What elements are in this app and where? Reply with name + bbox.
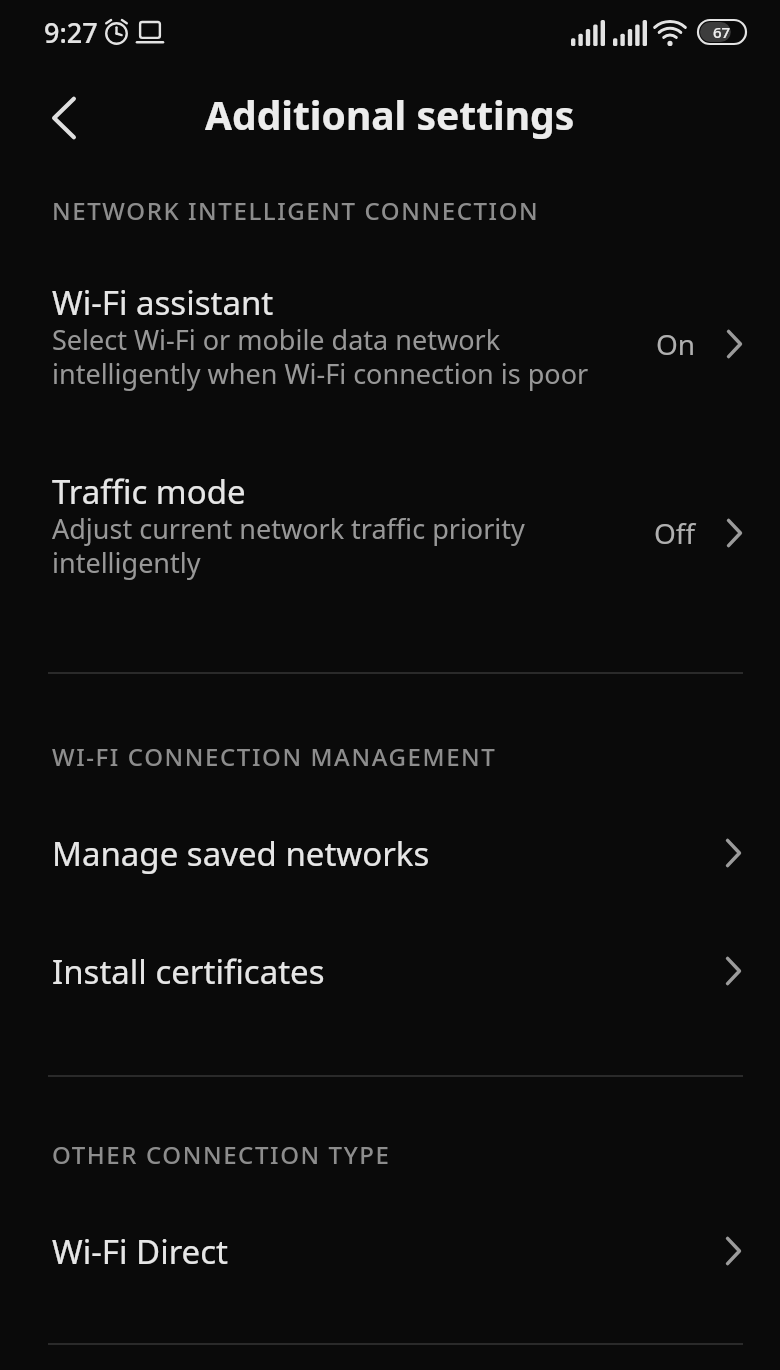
staticText: NETWORK INTELLIGENT CONNECTION	[52, 194, 540, 227]
staticText: OTHER CONNECTION TYPE	[52, 1138, 391, 1171]
button[interactable]: Install certificates	[0, 936, 780, 1006]
button[interactable]: Wi-Fi Direct	[0, 1216, 780, 1286]
staticText: Additional settings	[205, 88, 575, 141]
staticText: Wi-Fi Direct	[52, 1229, 228, 1274]
staticText: 67	[713, 22, 731, 42]
button[interactable]: Manage saved networks	[0, 818, 780, 888]
staticText: Traffic mode	[52, 469, 246, 514]
staticText: Select Wi-Fi or mobile data network inte…	[52, 321, 589, 392]
staticText: WI-FI CONNECTION MANAGEMENT	[52, 740, 497, 773]
staticText: 9:27	[44, 14, 98, 51]
staticText: Manage saved networks	[52, 831, 430, 876]
staticText: Wi-Fi assistant	[52, 280, 274, 325]
staticText: Install certificates	[52, 949, 325, 994]
button[interactable]	[40, 94, 88, 142]
button[interactable]: Traffic mode	[0, 461, 780, 597]
button[interactable]: Wi-Fi assistant	[0, 272, 780, 408]
staticText: Off	[654, 514, 696, 552]
staticText: Adjust current network traffic priority …	[52, 510, 525, 581]
staticText: On	[656, 325, 696, 363]
